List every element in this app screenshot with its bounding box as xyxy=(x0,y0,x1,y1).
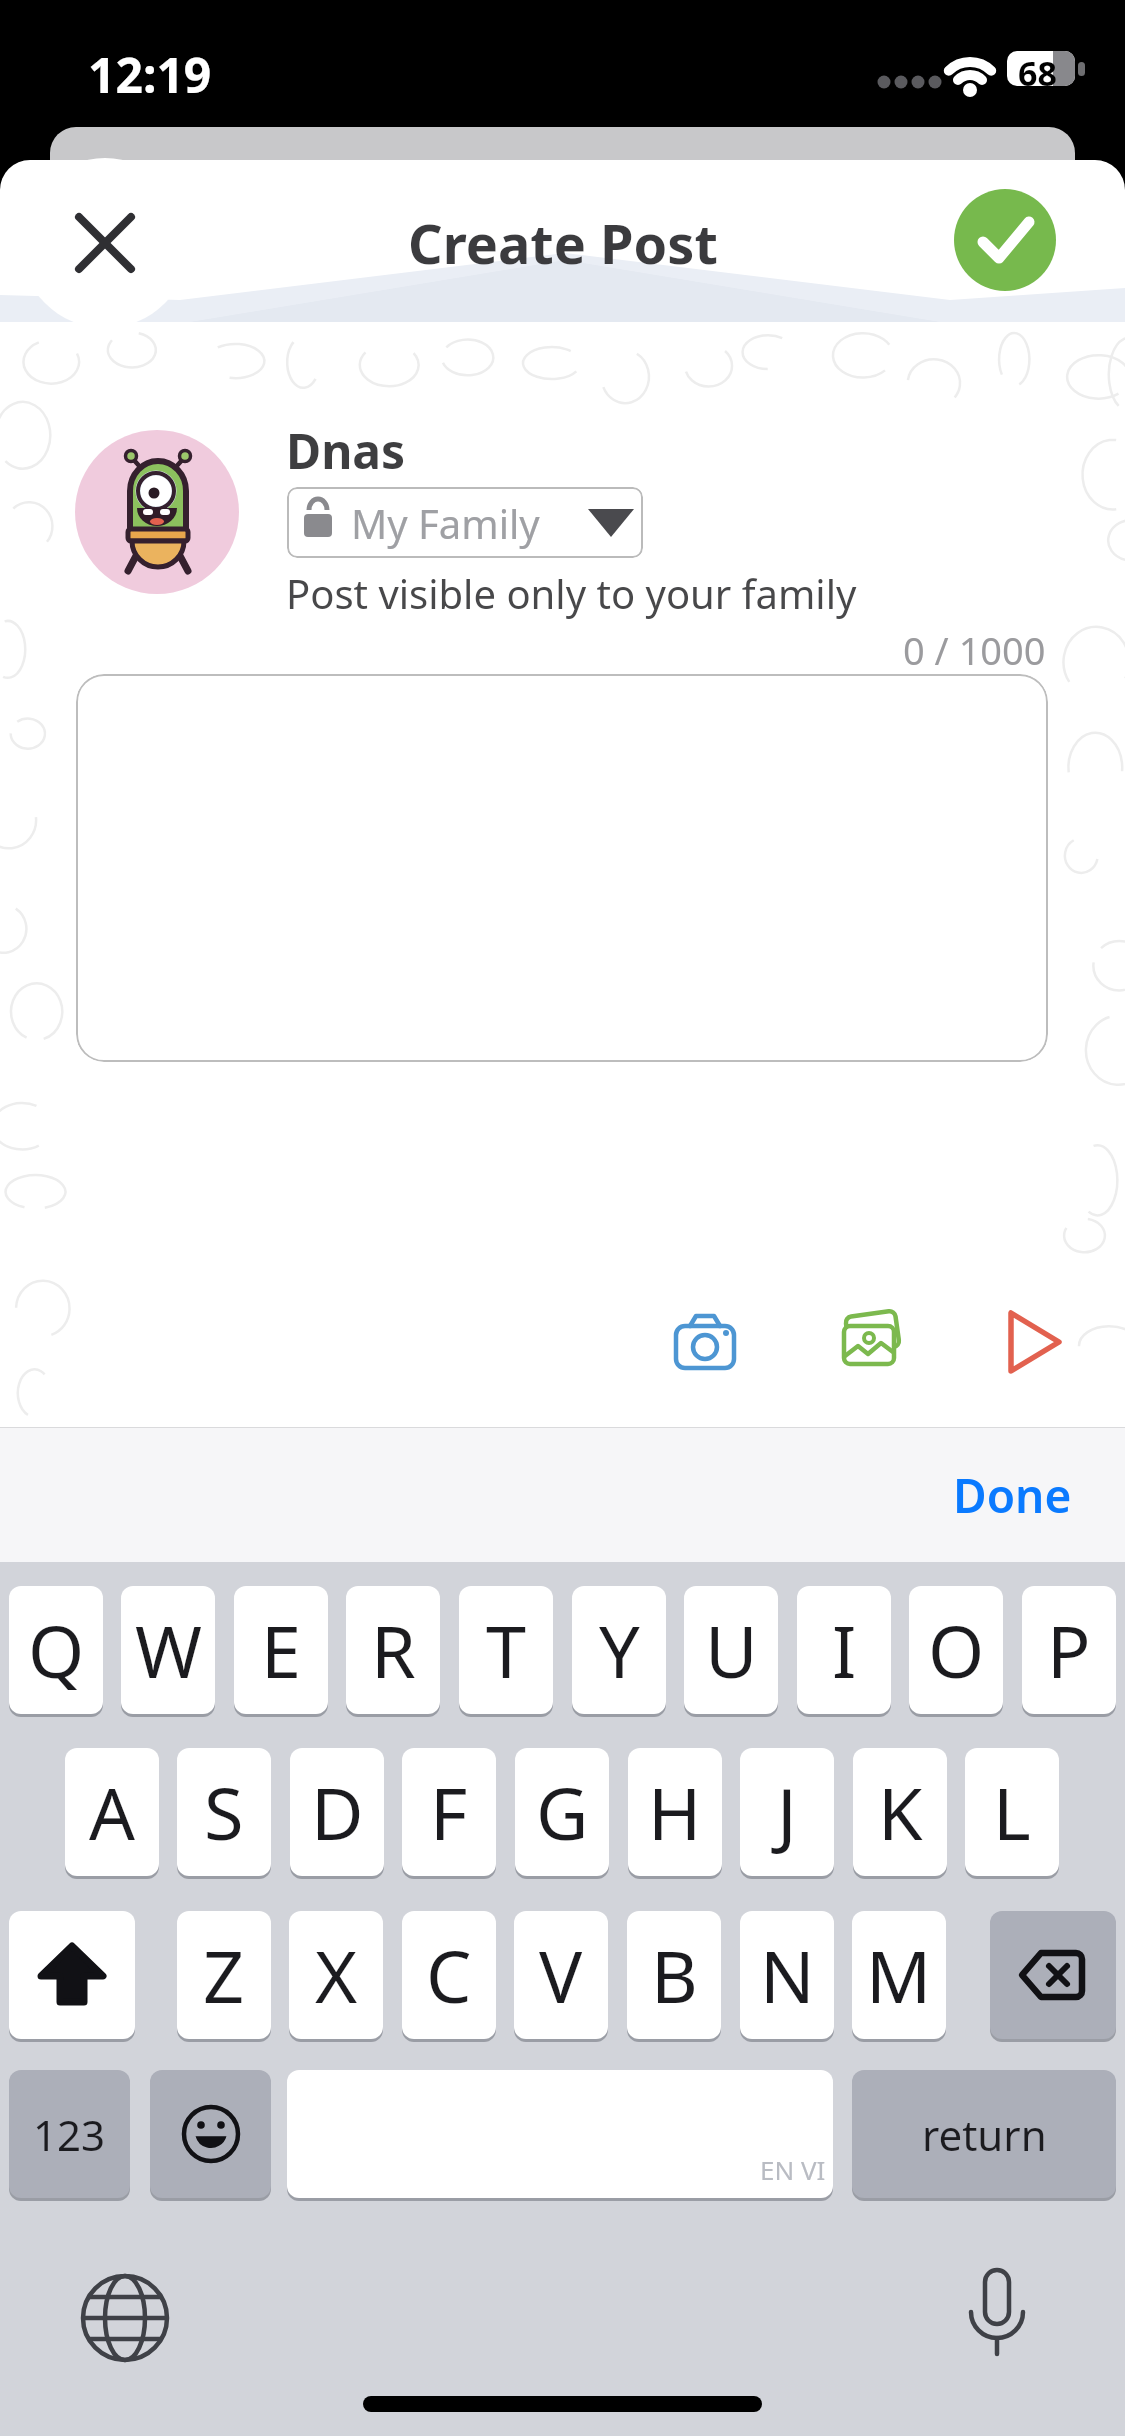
staticText: return xyxy=(922,2106,1047,2163)
button[interactable] xyxy=(287,2070,833,2198)
button[interactable]: My Family xyxy=(287,487,643,558)
staticText: U xyxy=(705,1601,758,1699)
button[interactable] xyxy=(60,198,150,288)
staticText: P xyxy=(1047,1601,1091,1699)
button[interactable] xyxy=(954,189,1056,291)
button[interactable] xyxy=(1003,1305,1069,1379)
staticText: 68 xyxy=(1018,50,1057,96)
button[interactable]: G xyxy=(515,1748,609,1876)
button[interactable]: A xyxy=(65,1748,159,1876)
staticText: E xyxy=(261,1601,302,1699)
button[interactable] xyxy=(990,1911,1116,2039)
button[interactable]: I xyxy=(797,1586,891,1714)
staticText: M xyxy=(866,1926,932,2024)
button[interactable]: X xyxy=(289,1911,383,2039)
staticText: A xyxy=(89,1763,136,1861)
staticText: 123 xyxy=(33,2106,106,2163)
staticText: R xyxy=(371,1601,416,1699)
staticText: D xyxy=(311,1763,364,1861)
button[interactable]: L xyxy=(965,1748,1059,1876)
staticText: Q xyxy=(28,1601,85,1699)
button[interactable]: return xyxy=(852,2070,1116,2198)
button[interactable]: T xyxy=(459,1586,553,1714)
staticText: H xyxy=(648,1763,702,1861)
staticText: L xyxy=(993,1763,1031,1861)
button[interactable]: P xyxy=(1022,1586,1116,1714)
button[interactable]: Y xyxy=(572,1586,666,1714)
button[interactable]: U xyxy=(684,1586,778,1714)
button[interactable]: C xyxy=(402,1911,496,2039)
staticText: G xyxy=(536,1763,589,1861)
staticText: My Family xyxy=(351,496,540,550)
button[interactable] xyxy=(9,1911,135,2039)
button[interactable]: R xyxy=(346,1586,440,1714)
button[interactable]: F xyxy=(402,1748,496,1876)
button[interactable] xyxy=(76,674,1048,1062)
staticText: F xyxy=(430,1763,468,1861)
staticText: K xyxy=(878,1763,923,1861)
button[interactable]: D xyxy=(290,1748,384,1876)
button[interactable] xyxy=(75,2268,175,2368)
button[interactable]: H xyxy=(628,1748,722,1876)
staticText: EN VI xyxy=(760,2152,826,2187)
staticText: V xyxy=(539,1926,583,2024)
button[interactable]: J xyxy=(740,1748,834,1876)
button[interactable]: W xyxy=(121,1586,215,1714)
button[interactable]: Done xyxy=(920,1445,1105,1545)
staticText: Z xyxy=(203,1926,245,2024)
staticText: 12:19 xyxy=(88,42,212,107)
button[interactable]: Q xyxy=(9,1586,103,1714)
staticText: W xyxy=(135,1601,202,1699)
button[interactable]: E xyxy=(234,1586,328,1714)
staticText: T xyxy=(486,1601,527,1699)
button[interactable]: N xyxy=(740,1911,834,2039)
button[interactable] xyxy=(670,1308,740,1378)
staticText: X xyxy=(315,1926,358,2024)
button[interactable]: B xyxy=(627,1911,721,2039)
staticText: Done xyxy=(953,1464,1072,1527)
button[interactable]: Z xyxy=(177,1911,271,2039)
staticText: J xyxy=(777,1763,797,1861)
button[interactable]: O xyxy=(909,1586,1003,1714)
staticText: C xyxy=(426,1926,472,2024)
staticText: Create Post xyxy=(408,206,718,280)
button[interactable]: V xyxy=(514,1911,608,2039)
button[interactable] xyxy=(150,2070,271,2198)
staticText: 0 / 1000 xyxy=(903,624,1046,676)
button[interactable]: M xyxy=(852,1911,946,2039)
staticText: Y xyxy=(599,1601,640,1699)
staticText: N xyxy=(760,1926,815,2024)
button[interactable]: K xyxy=(853,1748,947,1876)
staticText: S xyxy=(204,1763,244,1861)
button[interactable] xyxy=(836,1306,906,1376)
staticText: O xyxy=(928,1601,985,1699)
button[interactable]: S xyxy=(177,1748,271,1876)
button[interactable]: 123 xyxy=(9,2070,130,2198)
staticText: I xyxy=(832,1601,857,1699)
staticText: Post visible only to your family xyxy=(286,566,857,620)
button[interactable] xyxy=(947,2262,1047,2362)
staticText: B xyxy=(651,1926,698,2024)
staticText: Dnas xyxy=(286,418,406,483)
